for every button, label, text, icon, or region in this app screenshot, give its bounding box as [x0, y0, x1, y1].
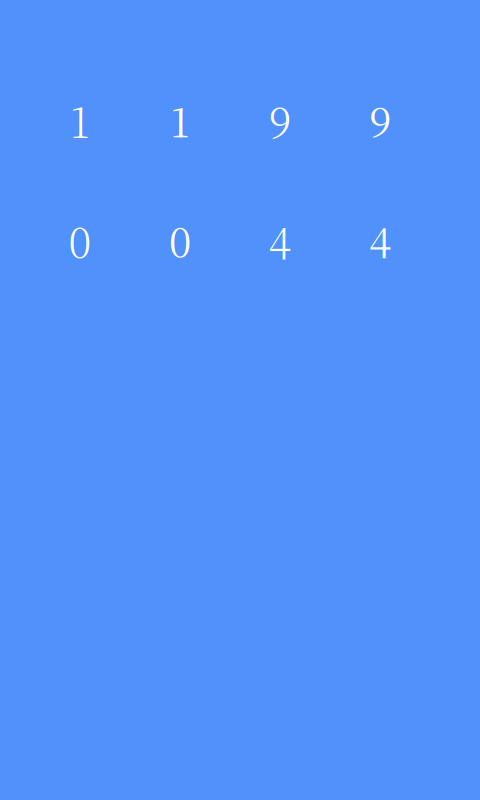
staticText: 4	[369, 211, 391, 269]
staticText: 0	[68, 210, 91, 270]
staticText: 9	[268, 90, 291, 150]
staticText: 1	[170, 91, 189, 149]
staticText: 0	[169, 211, 191, 269]
staticText: 1	[70, 90, 90, 150]
staticText: 4	[268, 210, 291, 270]
staticText: 9	[369, 91, 391, 149]
